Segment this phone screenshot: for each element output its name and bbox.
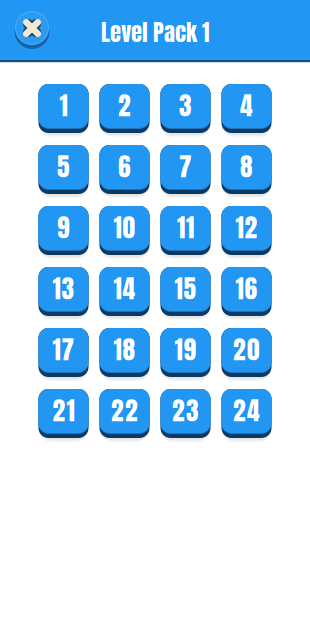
staticText: 24 bbox=[233, 391, 260, 429]
button[interactable]: 20 bbox=[221, 330, 271, 379]
button[interactable]: 23 bbox=[160, 391, 210, 440]
staticText: Level Pack 1 bbox=[101, 15, 209, 49]
button[interactable]: 2 bbox=[99, 86, 149, 135]
staticText: 18 bbox=[113, 330, 135, 368]
button[interactable]: 14 bbox=[99, 269, 149, 318]
button[interactable]: 17 bbox=[38, 330, 88, 379]
staticText: 21 bbox=[52, 391, 74, 429]
button[interactable]: 21 bbox=[38, 391, 88, 440]
button[interactable]: 7 bbox=[160, 147, 210, 196]
staticText: 16 bbox=[235, 269, 257, 307]
staticText: 7 bbox=[179, 147, 192, 185]
staticText: 19 bbox=[174, 330, 196, 368]
staticText: 12 bbox=[235, 208, 257, 246]
button[interactable]: 22 bbox=[99, 391, 149, 440]
staticText: 1 bbox=[59, 86, 67, 124]
staticText: 14 bbox=[113, 269, 135, 307]
staticText: 5 bbox=[57, 147, 70, 185]
staticText: 17 bbox=[52, 330, 74, 368]
staticText: 3 bbox=[179, 86, 192, 124]
button[interactable]: 1 bbox=[38, 86, 88, 135]
button[interactable]: 9 bbox=[38, 208, 88, 257]
staticText: 22 bbox=[111, 391, 138, 429]
staticText: 20 bbox=[233, 330, 260, 368]
button[interactable]: 12 bbox=[221, 208, 271, 257]
button[interactable]: 18 bbox=[99, 330, 149, 379]
button[interactable]: 16 bbox=[221, 269, 271, 318]
button[interactable]: 11 bbox=[160, 208, 210, 257]
staticText: 23 bbox=[172, 391, 199, 429]
button[interactable]: 19 bbox=[160, 330, 210, 379]
button[interactable]: 24 bbox=[221, 391, 271, 440]
staticText: 8 bbox=[240, 147, 253, 185]
button[interactable]: 6 bbox=[99, 147, 149, 196]
staticText: 2 bbox=[118, 86, 131, 124]
button[interactable]: Close bbox=[13, 11, 51, 49]
button[interactable]: 10 bbox=[99, 208, 149, 257]
staticText: 10 bbox=[113, 208, 135, 246]
button[interactable]: 15 bbox=[160, 269, 210, 318]
staticText: 15 bbox=[174, 269, 196, 307]
staticText: 6 bbox=[118, 147, 131, 185]
button[interactable]: 5 bbox=[38, 147, 88, 196]
staticText: 11 bbox=[177, 208, 194, 246]
staticText: 9 bbox=[57, 208, 70, 246]
button[interactable]: 8 bbox=[221, 147, 271, 196]
button[interactable]: 13 bbox=[38, 269, 88, 318]
button[interactable]: 3 bbox=[160, 86, 210, 135]
staticText: 4 bbox=[240, 86, 253, 124]
staticText: 13 bbox=[52, 269, 74, 307]
button[interactable]: 4 bbox=[221, 86, 271, 135]
